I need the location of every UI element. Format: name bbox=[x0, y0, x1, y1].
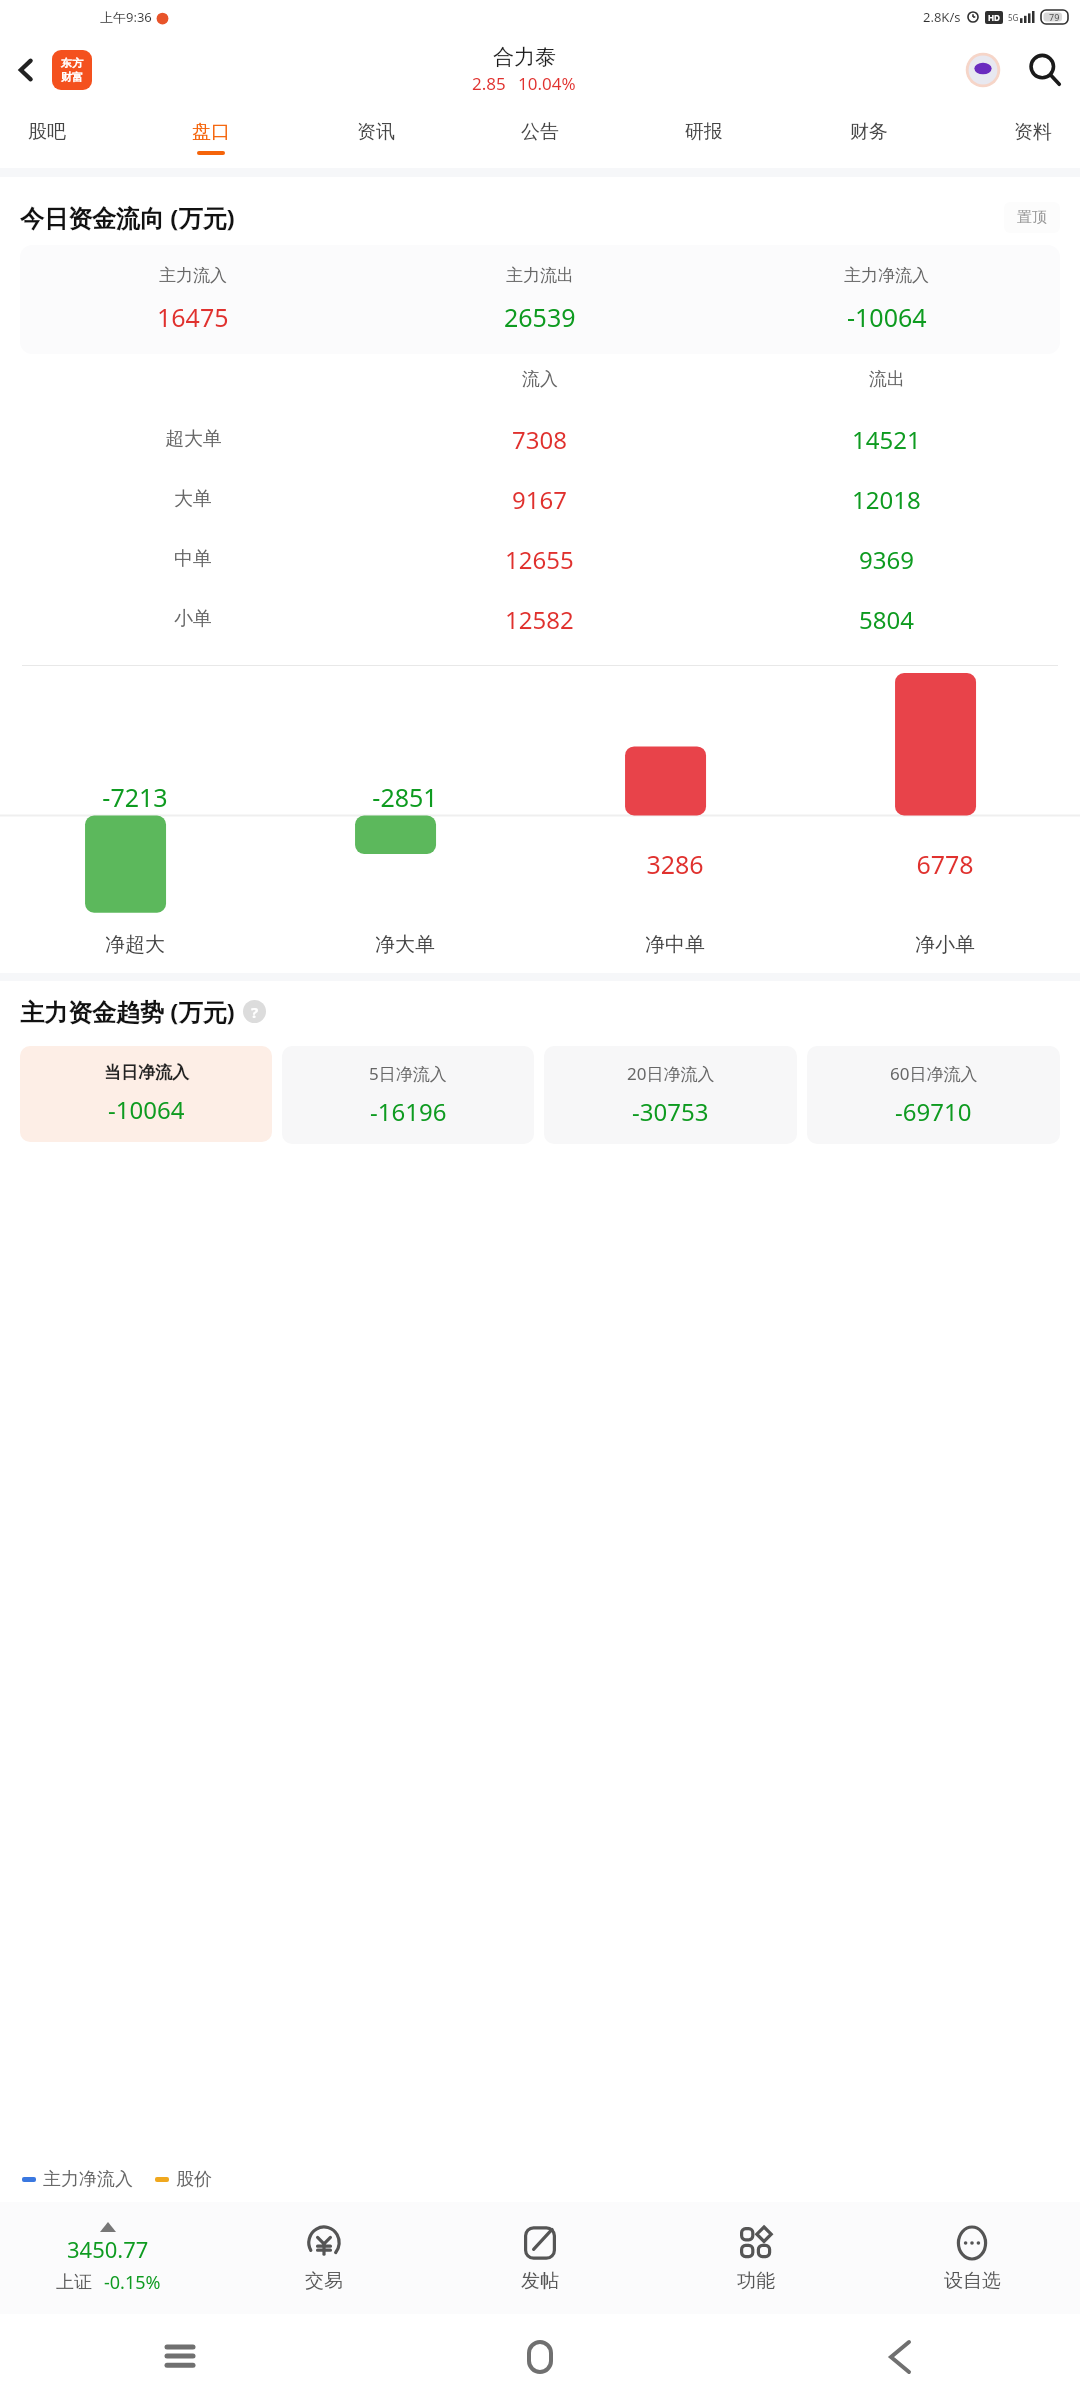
staticText: 5G bbox=[1008, 12, 1019, 23]
staticText: 26539 bbox=[504, 300, 576, 334]
staticText: 财务 bbox=[850, 120, 888, 144]
staticText: 流出 bbox=[869, 368, 905, 391]
staticText: 主力净流入 bbox=[844, 265, 929, 286]
staticText: -30753 bbox=[632, 1095, 709, 1128]
staticText: 主力流入 bbox=[159, 265, 227, 286]
staticText: 12582 bbox=[505, 603, 574, 636]
button[interactable]: Assistant bbox=[956, 43, 1010, 97]
staticText: 设自选 bbox=[944, 2269, 1001, 2293]
staticText: 置顶 bbox=[1017, 208, 1047, 227]
button[interactable]: Back bbox=[0, 33, 52, 106]
staticText: -2851 bbox=[270, 780, 540, 814]
staticText: 财富 bbox=[61, 70, 83, 84]
button[interactable]: Recents bbox=[153, 2333, 207, 2381]
staticText: 交易 bbox=[305, 2269, 343, 2293]
staticText: 2.85 bbox=[472, 72, 506, 95]
staticText: 小单 bbox=[174, 607, 212, 631]
button[interactable]: 3450.77 bbox=[0, 2202, 216, 2314]
button[interactable]: 大单 bbox=[20, 469, 1060, 529]
staticText: 79 bbox=[1049, 11, 1060, 23]
button[interactable]: 20日净流入 bbox=[544, 1062, 797, 1128]
button[interactable]: East Money bbox=[52, 50, 92, 90]
staticText: 2.8K/s bbox=[923, 8, 961, 26]
staticText: -10064 bbox=[108, 1093, 185, 1126]
staticText: 12018 bbox=[852, 483, 921, 516]
staticText: 净小单 bbox=[915, 932, 975, 957]
staticText: 资料 bbox=[1014, 120, 1052, 144]
staticText: 主力净流入 bbox=[43, 2168, 133, 2191]
button[interactable]: 设自选 bbox=[864, 2202, 1080, 2314]
staticText: 20日净流入 bbox=[627, 1062, 715, 1085]
staticText: 12655 bbox=[505, 543, 574, 576]
staticText: 净超大 bbox=[105, 932, 165, 957]
staticText: 流入 bbox=[522, 368, 558, 391]
staticText: 14521 bbox=[852, 423, 921, 456]
staticText: 盘口 bbox=[192, 120, 230, 144]
staticText: 5804 bbox=[859, 603, 914, 636]
staticText: 9369 bbox=[859, 543, 914, 576]
button[interactable]: Help bbox=[243, 1000, 266, 1023]
button[interactable]: 当日净流入 bbox=[20, 1062, 272, 1126]
staticText: 功能 bbox=[737, 2269, 775, 2293]
staticText: 净中单 bbox=[645, 932, 705, 957]
button[interactable]: 小单 bbox=[20, 589, 1060, 649]
staticText: -16196 bbox=[370, 1095, 447, 1128]
staticText: 10.04% bbox=[518, 72, 576, 95]
staticText: 发帖 bbox=[521, 2269, 559, 2293]
button[interactable]: 功能 bbox=[648, 2202, 864, 2314]
staticText: 公告 bbox=[521, 120, 559, 144]
staticText: 3286 bbox=[540, 847, 810, 881]
button[interactable]: Home bbox=[515, 2328, 565, 2386]
staticText: 主力资金趋势 (万元) bbox=[20, 995, 235, 1028]
staticText: 今日资金流向 (万元) bbox=[20, 201, 235, 234]
button[interactable]: 资料 bbox=[1014, 120, 1052, 155]
staticText: 主力流出 bbox=[506, 265, 574, 286]
staticText: 当日净流入 bbox=[104, 1062, 189, 1083]
staticText: 60日净流入 bbox=[890, 1062, 978, 1085]
button[interactable]: 股吧 bbox=[28, 120, 66, 155]
button[interactable]: Back bbox=[877, 2328, 923, 2386]
staticText: 大单 bbox=[174, 487, 212, 511]
staticText: -69710 bbox=[895, 1095, 972, 1128]
staticText: 5日净流入 bbox=[369, 1062, 447, 1085]
button[interactable]: 中单 bbox=[20, 529, 1060, 589]
button[interactable]: 财务 bbox=[850, 120, 888, 155]
staticText: 股吧 bbox=[28, 120, 66, 144]
staticText: 净大单 bbox=[375, 932, 435, 957]
staticText: 上午9:36 bbox=[100, 8, 152, 26]
staticText: ? bbox=[251, 1002, 259, 1022]
staticText: -7213 bbox=[0, 780, 270, 814]
staticText: 资讯 bbox=[357, 120, 395, 144]
button[interactable]: 交易 bbox=[216, 2202, 432, 2314]
staticText: 3450.77 bbox=[67, 2234, 149, 2264]
staticText: 股价 bbox=[176, 2168, 212, 2191]
staticText: 超大单 bbox=[165, 427, 222, 451]
button[interactable]: 公告 bbox=[521, 120, 559, 155]
staticText: 9167 bbox=[512, 483, 567, 516]
button[interactable]: 资讯 bbox=[357, 120, 395, 155]
button[interactable]: 发帖 bbox=[432, 2202, 648, 2314]
staticText: -10064 bbox=[847, 300, 927, 334]
staticText: 合力泰 bbox=[493, 44, 556, 70]
button[interactable]: 研报 bbox=[685, 120, 723, 155]
button[interactable]: 5日净流入 bbox=[282, 1062, 534, 1128]
staticText: 上证 bbox=[56, 2271, 92, 2294]
button[interactable]: 超大单 bbox=[20, 409, 1060, 469]
staticText: 6778 bbox=[810, 847, 1080, 881]
staticText: 中单 bbox=[174, 547, 212, 571]
staticText: 东方 bbox=[61, 56, 83, 70]
button[interactable]: 盘口 bbox=[192, 120, 230, 155]
button[interactable]: 60日净流入 bbox=[807, 1062, 1060, 1128]
staticText: 7308 bbox=[512, 423, 567, 456]
staticText: HD bbox=[988, 12, 1000, 23]
button[interactable]: 主力流入 bbox=[20, 265, 1060, 334]
staticText: -0.15% bbox=[104, 2270, 161, 2295]
button[interactable]: Search bbox=[1010, 33, 1080, 106]
button[interactable]: 置顶 bbox=[1017, 208, 1047, 227]
staticText: 研报 bbox=[685, 120, 723, 144]
staticText: 16475 bbox=[157, 300, 229, 334]
